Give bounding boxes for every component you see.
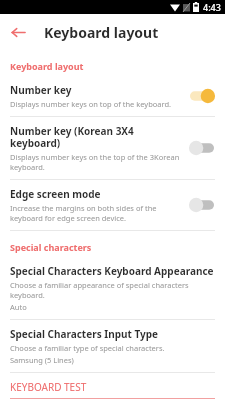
button[interactable]: Off	[187, 139, 217, 157]
staticText: Displays number keys on the top of the 3…	[10, 152, 181, 172]
staticText: Number key (Korean 3X4 keyboard)	[10, 124, 181, 150]
staticText: Choose a familiar type of special charac…	[10, 343, 165, 353]
button[interactable]: Edge screen mode	[0, 180, 225, 230]
staticText: Number key	[10, 83, 72, 97]
staticText: Auto	[10, 302, 27, 312]
staticText: Special Characters Input Type	[10, 327, 158, 341]
staticText: Displays number keys on top of the keybo…	[10, 99, 172, 109]
staticText: Special characters	[10, 241, 92, 253]
staticText: Special Characters Keyboard Appearance	[10, 264, 214, 278]
button[interactable]: Number key	[0, 76, 225, 116]
staticText: Samsung (5 Lines)	[10, 355, 74, 365]
button[interactable]: KEYBOARD TEST	[0, 373, 225, 399]
staticText: Edge screen mode	[10, 187, 101, 201]
button[interactable]: Special Characters Keyboard Appearance	[0, 257, 225, 319]
button[interactable]: Number key (Korean 3X4 keyboard)	[0, 117, 225, 179]
staticText: Keyboard layout	[44, 23, 159, 42]
button[interactable]: On	[187, 87, 217, 105]
staticText: KEYBOARD TEST	[10, 380, 87, 394]
staticText: Choose a familiar appearance of special …	[10, 280, 215, 300]
button[interactable]: Special Characters Input Type	[0, 320, 225, 372]
staticText: 4:43	[203, 1, 221, 13]
staticText: Increase the margins on both sides of th…	[10, 203, 181, 223]
button[interactable]: Off	[187, 196, 217, 214]
staticText: Keyboard layout	[10, 60, 84, 72]
button[interactable]: Back	[0, 14, 36, 50]
